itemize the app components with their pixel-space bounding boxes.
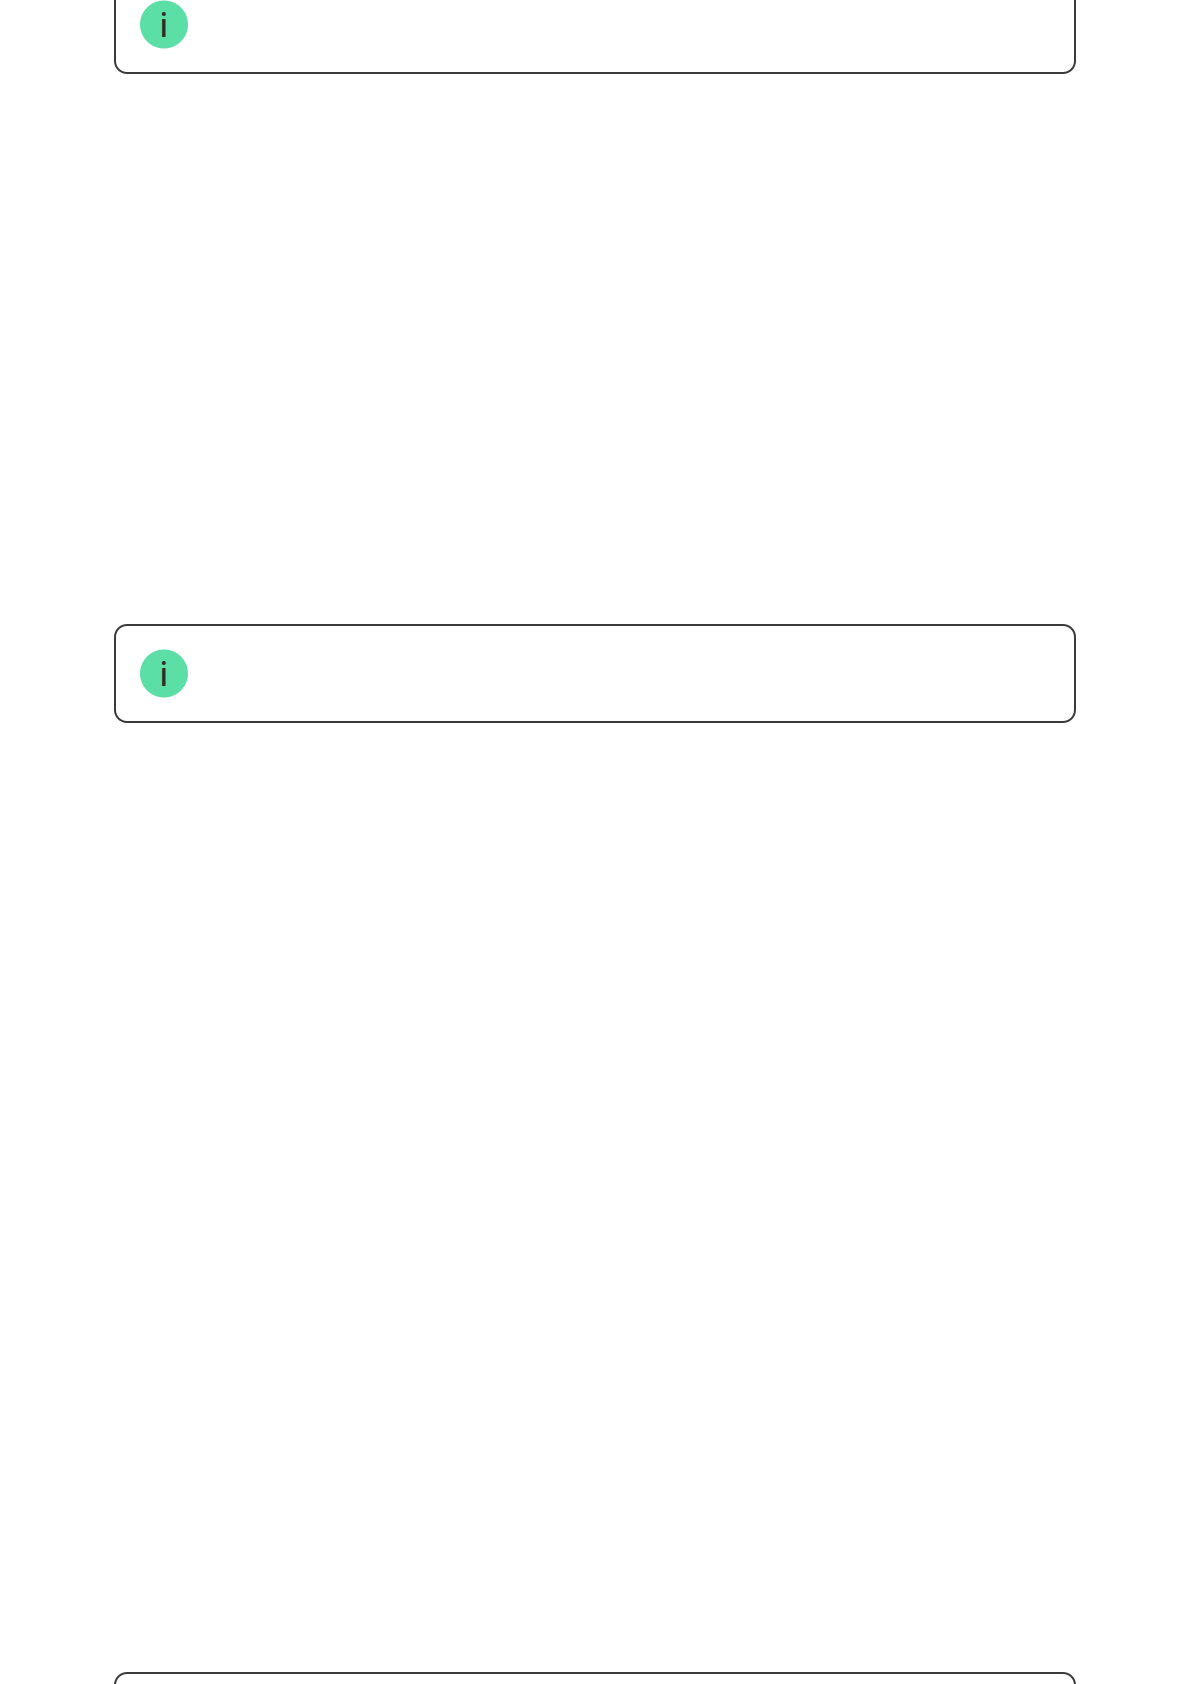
- button[interactable]: Information: [115, 0, 1075, 73]
- button[interactable]: Information: [115, 625, 1075, 722]
- button[interactable]: Information: [115, 1673, 1075, 1684]
- staticText: i: [159, 3, 168, 46]
- staticText: i: [159, 652, 168, 695]
